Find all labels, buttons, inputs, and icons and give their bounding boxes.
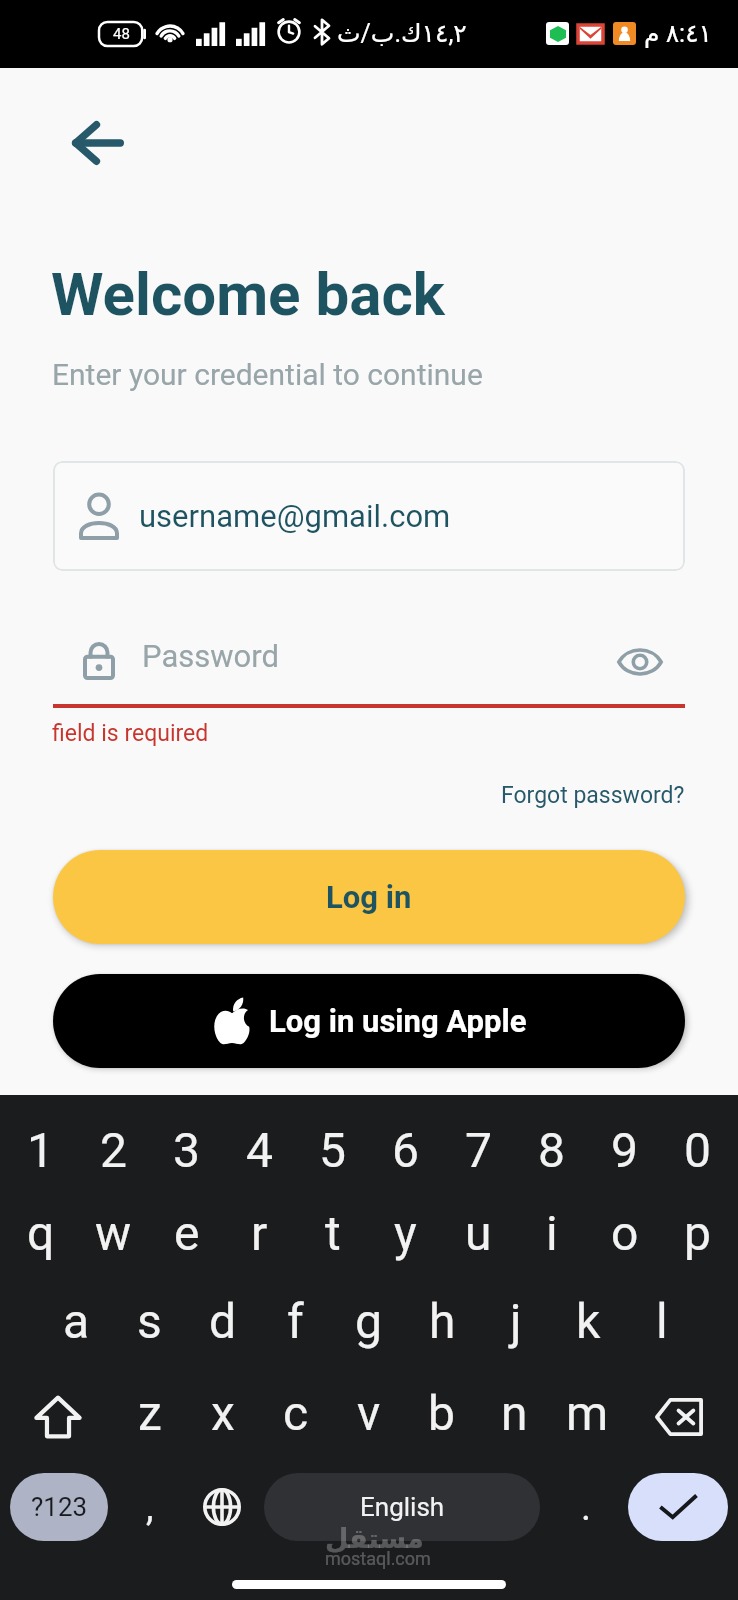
- button[interactable]: username@gmail.com: [53, 461, 685, 571]
- staticText: 8: [538, 1122, 565, 1178]
- staticText: Log in using Apple: [269, 1003, 527, 1039]
- button[interactable]: 3: [150, 1106, 223, 1194]
- button[interactable]: 9: [588, 1106, 661, 1194]
- button[interactable]: i: [515, 1189, 588, 1277]
- button[interactable]: Password: [53, 618, 573, 702]
- staticText: j: [510, 1293, 522, 1349]
- button[interactable]: h: [406, 1277, 479, 1365]
- staticText: e: [174, 1205, 200, 1261]
- staticText: 2: [100, 1122, 127, 1178]
- button[interactable]: Show password: [608, 630, 672, 694]
- button[interactable]: j: [479, 1277, 552, 1365]
- staticText: q: [27, 1205, 55, 1261]
- button[interactable]: ,: [120, 1473, 180, 1541]
- button[interactable]: g: [332, 1277, 405, 1365]
- button[interactable]: e: [150, 1189, 223, 1277]
- button[interactable]: r: [223, 1189, 296, 1277]
- button[interactable]: o: [588, 1189, 661, 1277]
- button[interactable]: c: [259, 1369, 332, 1457]
- staticText: i: [546, 1205, 558, 1261]
- button[interactable]: Change language: [192, 1473, 252, 1541]
- staticText: y: [394, 1205, 417, 1261]
- staticText: .: [581, 1485, 592, 1530]
- staticText: d: [209, 1293, 237, 1349]
- button[interactable]: Log in: [53, 850, 685, 944]
- button[interactable]: Log in using Apple: [53, 974, 685, 1068]
- button[interactable]: s: [113, 1277, 186, 1365]
- button[interactable]: v: [332, 1369, 405, 1457]
- staticText: Password: [142, 638, 279, 674]
- staticText: f: [287, 1293, 304, 1349]
- staticText: x: [211, 1385, 235, 1441]
- staticText: Welcome back: [51, 259, 445, 329]
- button[interactable]: n: [478, 1369, 551, 1457]
- button[interactable]: 2: [77, 1106, 150, 1194]
- staticText: w: [95, 1205, 132, 1261]
- staticText: 4: [246, 1122, 273, 1178]
- button[interactable]: a: [40, 1277, 113, 1365]
- staticText: ١٤,٢ك.ب/ث: [337, 19, 467, 48]
- button[interactable]: b: [405, 1369, 478, 1457]
- button[interactable]: 7: [442, 1106, 515, 1194]
- staticText: b: [428, 1385, 455, 1441]
- button[interactable]: d: [186, 1277, 259, 1365]
- button[interactable]: 1: [4, 1106, 77, 1194]
- staticText: v: [357, 1385, 381, 1441]
- button[interactable]: k: [552, 1277, 625, 1365]
- button[interactable]: 6: [369, 1106, 442, 1194]
- button[interactable]: 4: [223, 1106, 296, 1194]
- staticText: Forgot password?: [501, 782, 685, 809]
- staticText: ٨:٤١ م: [644, 19, 713, 48]
- button[interactable]: Forgot password?: [445, 772, 685, 818]
- staticText: Enter your credential to continue: [52, 357, 483, 392]
- staticText: 0: [684, 1122, 711, 1178]
- staticText: 6: [392, 1122, 419, 1178]
- button[interactable]: Enter: [628, 1473, 728, 1541]
- button[interactable]: w: [77, 1189, 150, 1277]
- staticText: username@gmail.com: [139, 498, 451, 534]
- button[interactable]: m: [551, 1369, 624, 1457]
- button[interactable]: l: [625, 1277, 698, 1365]
- staticText: u: [465, 1205, 492, 1261]
- button[interactable]: English: [264, 1473, 540, 1541]
- staticText: l: [656, 1293, 668, 1349]
- button[interactable]: z: [113, 1369, 186, 1457]
- staticText: r: [251, 1205, 268, 1261]
- button[interactable]: .: [556, 1473, 616, 1541]
- button[interactable]: 8: [515, 1106, 588, 1194]
- button[interactable]: Back: [67, 112, 129, 174]
- staticText: g: [355, 1293, 382, 1349]
- staticText: مستقل: [325, 1523, 424, 1554]
- button[interactable]: Shift: [22, 1373, 94, 1461]
- staticText: h: [429, 1293, 456, 1349]
- staticText: 7: [465, 1122, 492, 1178]
- staticText: 1: [27, 1122, 54, 1178]
- button[interactable]: Backspace: [643, 1373, 715, 1461]
- staticText: k: [576, 1293, 601, 1349]
- staticText: a: [63, 1293, 90, 1349]
- button[interactable]: 5: [296, 1106, 369, 1194]
- staticText: mostaql.com: [325, 1548, 431, 1569]
- staticText: c: [283, 1385, 309, 1441]
- staticText: Log in: [326, 879, 412, 915]
- staticText: z: [138, 1385, 162, 1441]
- staticText: t: [325, 1205, 341, 1261]
- button[interactable]: q: [4, 1189, 77, 1277]
- staticText: ?123: [31, 1492, 88, 1522]
- staticText: p: [684, 1205, 711, 1261]
- button[interactable]: ?123: [10, 1473, 108, 1541]
- button[interactable]: t: [296, 1189, 369, 1277]
- button[interactable]: p: [661, 1189, 734, 1277]
- staticText: field is required: [52, 720, 209, 747]
- staticText: o: [611, 1205, 639, 1261]
- staticText: ,: [146, 1485, 154, 1530]
- button[interactable]: y: [369, 1189, 442, 1277]
- staticText: m: [566, 1385, 609, 1441]
- button[interactable]: u: [442, 1189, 515, 1277]
- staticText: English: [360, 1492, 445, 1522]
- button[interactable]: x: [186, 1369, 259, 1457]
- staticText: n: [501, 1385, 528, 1441]
- button[interactable]: 0: [661, 1106, 734, 1194]
- staticText: 9: [611, 1122, 638, 1178]
- button[interactable]: f: [259, 1277, 332, 1365]
